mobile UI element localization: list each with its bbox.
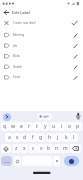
staticText: t <box>36 123 38 130</box>
staticText: w <box>11 123 15 130</box>
button[interactable] <box>1 144 11 153</box>
button[interactable]: f <box>29 133 37 142</box>
staticText: Job <box>13 44 18 48</box>
button[interactable]: q <box>1 122 9 131</box>
button[interactable] <box>0 30 83 41</box>
staticText: Book <box>13 54 20 58</box>
staticText: Create new label <box>13 21 36 25</box>
button[interactable]: y <box>41 122 49 131</box>
button[interactable] <box>0 62 83 73</box>
staticText: y <box>44 123 47 130</box>
button[interactable]: i <box>58 122 66 131</box>
staticText: f <box>32 134 34 141</box>
button[interactable]: s <box>13 133 21 142</box>
button[interactable] <box>70 144 81 153</box>
button[interactable] <box>64 156 79 166</box>
staticText: m <box>63 145 68 152</box>
button[interactable]: p <box>74 122 82 131</box>
staticText: a <box>8 134 11 141</box>
button[interactable]: b <box>45 144 53 153</box>
staticText: b <box>47 145 51 152</box>
button[interactable] <box>0 17 68 28</box>
button[interactable]: n <box>53 144 61 153</box>
button[interactable] <box>3 113 11 121</box>
button[interactable]: k <box>62 133 70 142</box>
staticText: e <box>20 123 23 130</box>
staticText: c <box>32 145 35 152</box>
button[interactable]: e <box>17 122 25 131</box>
button[interactable]: w <box>9 122 17 131</box>
button[interactable] <box>74 111 83 120</box>
button[interactable]: ?123 <box>1 156 12 166</box>
button[interactable] <box>69 18 81 28</box>
button[interactable]: u <box>50 122 58 131</box>
staticText: q <box>3 123 7 130</box>
staticText: o <box>68 123 72 130</box>
staticText: Health <box>13 65 22 69</box>
button[interactable]: g <box>37 133 45 142</box>
staticText: i <box>61 123 63 130</box>
staticText: u <box>52 123 56 130</box>
staticText: g <box>39 134 43 141</box>
staticText: Food <box>13 75 20 79</box>
button[interactable]: h <box>46 133 54 142</box>
button[interactable] <box>0 51 83 62</box>
button[interactable]: d <box>21 133 29 142</box>
staticText: l <box>73 134 75 141</box>
button[interactable]: v <box>37 144 45 153</box>
staticText: s <box>16 134 19 141</box>
staticText: Meeting <box>13 33 25 37</box>
staticText: j <box>57 134 59 141</box>
button[interactable]: t <box>33 122 41 131</box>
button[interactable] <box>37 113 52 120</box>
button[interactable]: j <box>54 133 62 142</box>
staticText: Edit Label <box>12 10 31 15</box>
button[interactable]: l <box>70 133 78 142</box>
button[interactable] <box>53 156 60 166</box>
staticText: v <box>40 145 43 152</box>
button[interactable]: c <box>29 144 37 153</box>
staticText: h <box>48 134 52 141</box>
staticText: x <box>23 145 26 152</box>
staticText: k <box>65 134 68 141</box>
button[interactable]: x <box>20 144 28 153</box>
staticText: p <box>76 123 80 130</box>
button[interactable] <box>2 8 11 17</box>
button[interactable]: r <box>25 122 33 131</box>
staticText: d <box>23 134 27 141</box>
button[interactable] <box>14 156 21 166</box>
staticText: z <box>15 145 18 152</box>
button[interactable]: a <box>5 133 13 142</box>
staticText: n <box>55 145 59 152</box>
staticText: ?123 <box>4 160 10 163</box>
button[interactable] <box>0 40 83 51</box>
button[interactable] <box>0 72 83 83</box>
button[interactable]: o <box>66 122 74 131</box>
button[interactable]: m <box>61 144 69 153</box>
staticText: r <box>28 123 31 130</box>
button[interactable]: z <box>12 144 20 153</box>
